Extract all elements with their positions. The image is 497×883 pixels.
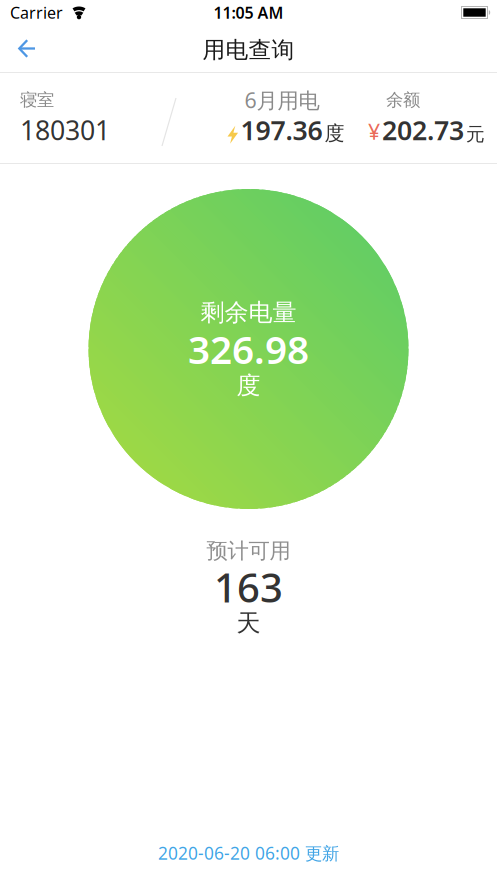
staticText: 元 (466, 123, 485, 146)
button[interactable] (0, 27, 35, 70)
staticText: 11:05 AM (213, 2, 283, 23)
staticText: 2020-06-20 06:00 更新 (158, 841, 339, 864)
staticText: 寝室 (20, 89, 54, 111)
staticText: 326.98 (188, 323, 309, 375)
staticText: 6月用电 (244, 86, 319, 114)
staticText: 度 (324, 121, 344, 146)
staticText: 剩余电量 (200, 298, 296, 327)
staticText: 用电查询 (202, 36, 294, 64)
staticText: 预计可用 (206, 538, 290, 564)
staticText: 197.36 (240, 112, 322, 148)
staticText: Carrier (10, 2, 63, 23)
staticText: 202.73 (382, 112, 464, 148)
staticText: 度 (236, 371, 260, 400)
staticText: 180301 (20, 112, 110, 148)
staticText: 163 (214, 560, 283, 613)
staticText: 余额 (386, 89, 420, 111)
staticText: ¥ (368, 117, 380, 146)
staticText: 天 (236, 608, 260, 638)
